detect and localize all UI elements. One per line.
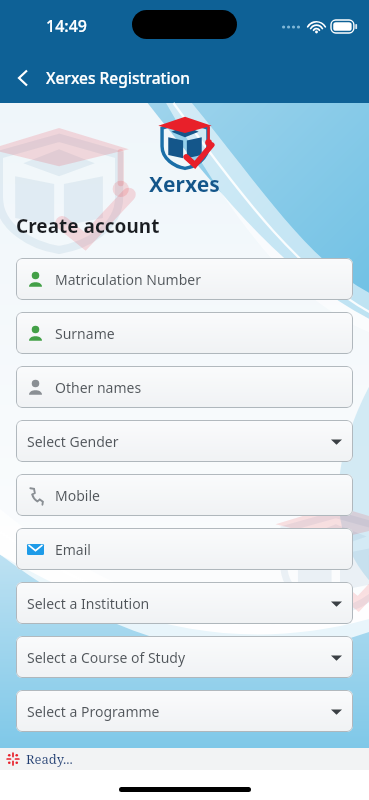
staticText: Select a Programme [27,702,331,721]
button[interactable]: Select Gender [16,420,353,462]
button[interactable]: Email [16,528,353,570]
staticText: Ready... [26,750,73,768]
button[interactable]: Select a Course of Study [16,636,353,678]
button[interactable]: Select a Institution [16,582,353,624]
staticText: Xerxes [149,170,220,199]
staticText: Select a Course of Study [27,648,331,667]
button[interactable]: Matriculation Number [16,258,353,300]
button[interactable]: Back [0,55,46,101]
staticText: Mobile [55,486,342,505]
staticText: Xerxes Registration [46,67,190,88]
staticText: Other names [55,378,342,397]
staticText: Matriculation Number [55,270,342,289]
staticText: Create account [16,213,160,239]
staticText: Email [55,540,342,559]
button[interactable]: Other names [16,366,353,408]
staticText: 14:49 [46,15,87,37]
button[interactable]: Surname [16,312,353,354]
button[interactable]: Select a Programme [16,690,353,732]
staticText: Select a Institution [27,594,331,613]
staticText: Surname [55,324,342,343]
button[interactable]: Mobile [16,474,353,516]
staticText: Select Gender [27,432,331,451]
